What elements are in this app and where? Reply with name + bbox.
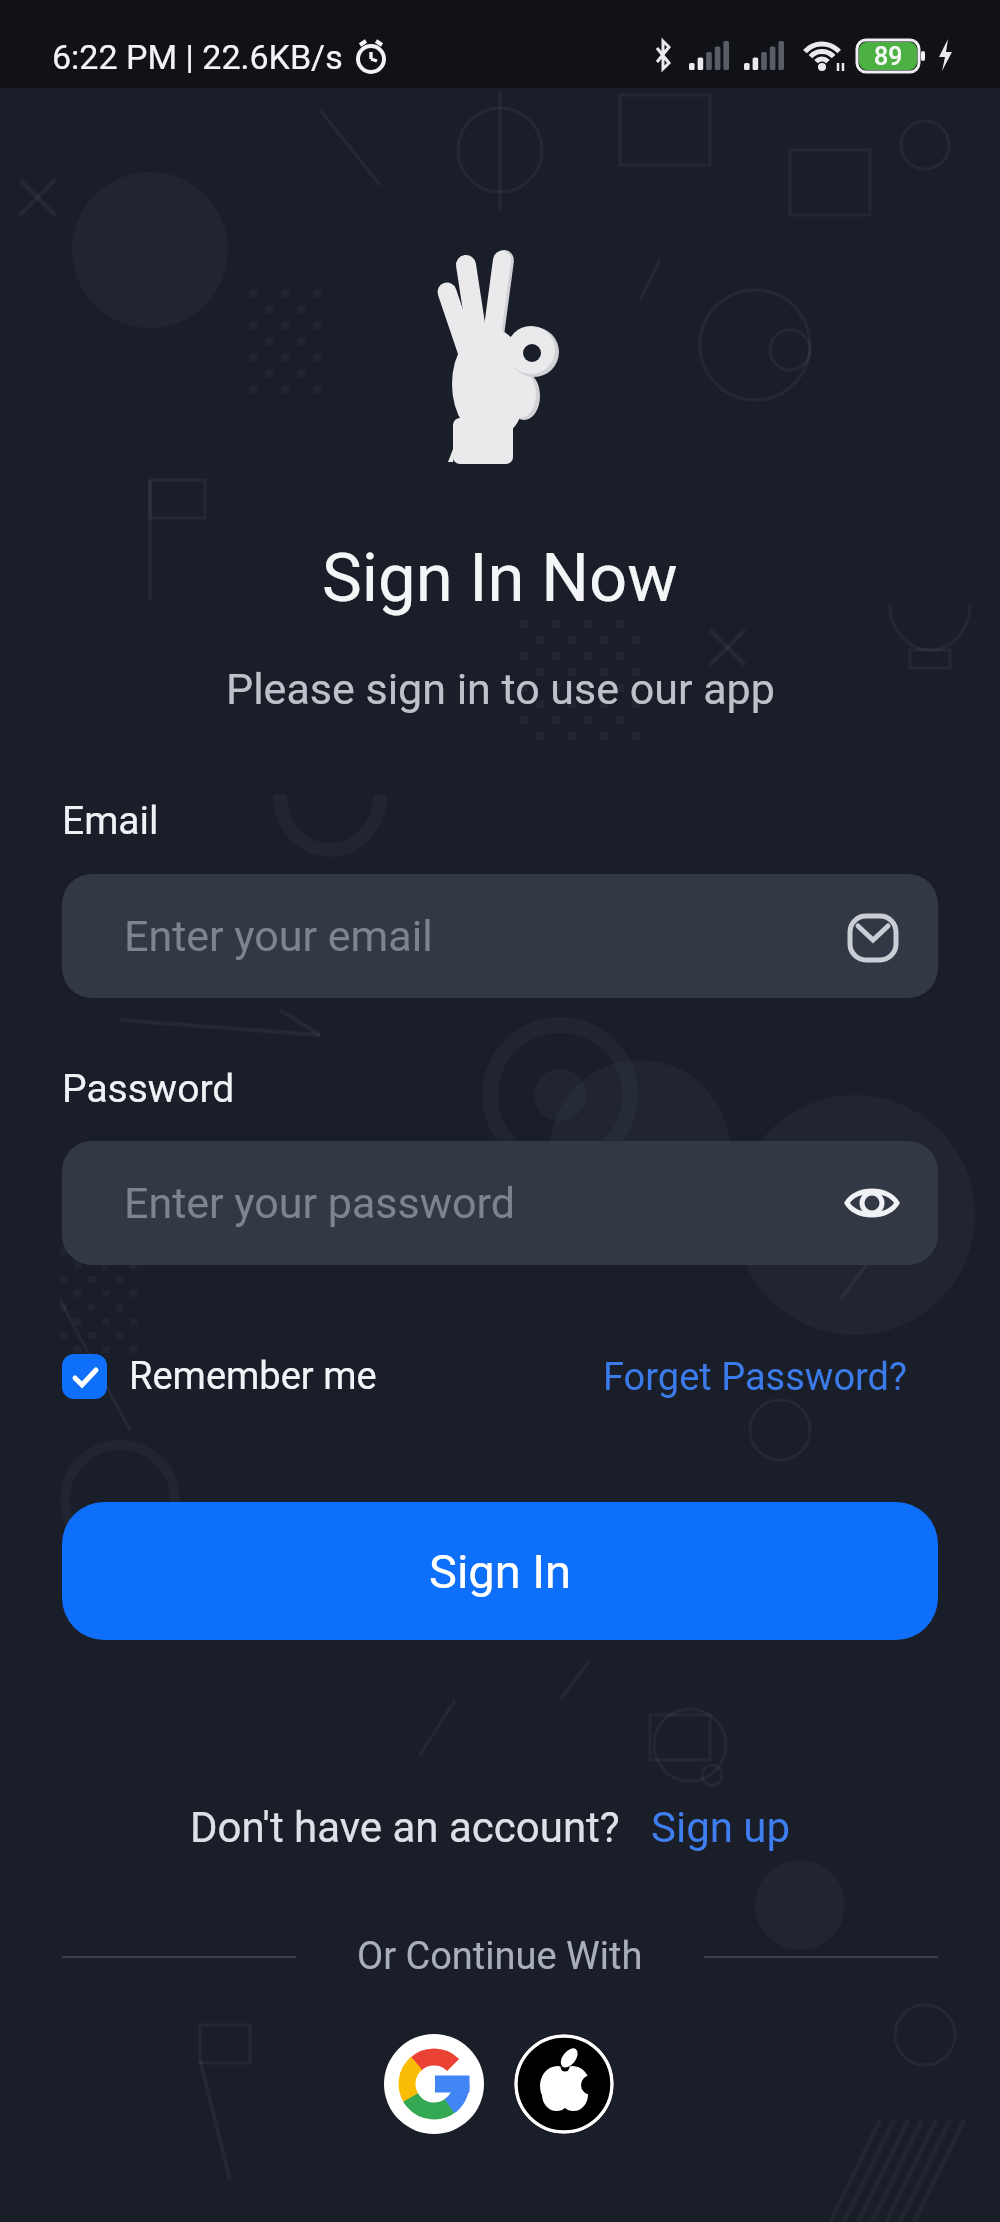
staticText: Email xyxy=(62,798,159,844)
button[interactable]: Sign up xyxy=(651,1803,791,1852)
button[interactable]: Forget Password? xyxy=(603,1355,907,1400)
staticText: Password xyxy=(62,1066,235,1112)
button[interactable] xyxy=(514,2034,614,2134)
staticText: Enter your password xyxy=(124,1178,515,1228)
button[interactable] xyxy=(384,2034,484,2134)
staticText: Or Continue With xyxy=(357,1934,643,1979)
staticText: 89 xyxy=(874,42,903,70)
staticText: Sign In xyxy=(429,1544,572,1599)
staticText: Please sign in to use our app xyxy=(226,664,775,714)
staticText: 6:22 PM | 22.6KB/s xyxy=(52,37,343,77)
staticText: Don't have an account? xyxy=(190,1803,620,1852)
staticText: Remember me xyxy=(129,1354,377,1399)
button[interactable]: Enter your email xyxy=(62,874,938,998)
staticText: Enter your email xyxy=(124,911,433,961)
button[interactable]: Remember me xyxy=(62,1354,377,1399)
button[interactable]: Sign In xyxy=(62,1502,938,1640)
button[interactable]: Enter your password xyxy=(62,1141,938,1265)
staticText: Sign In Now xyxy=(322,539,678,618)
